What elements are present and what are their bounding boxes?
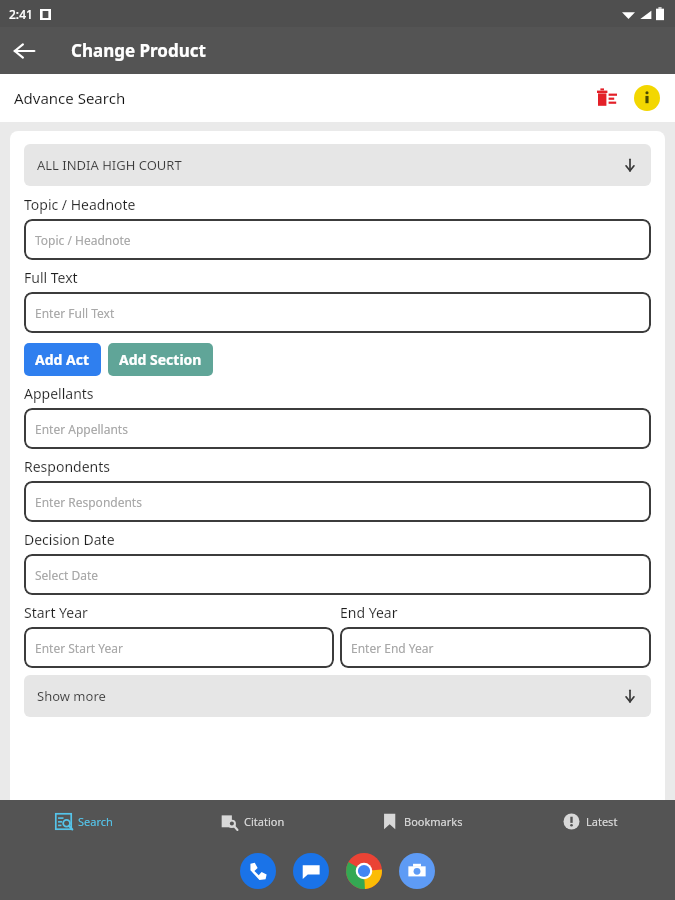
staticText: Citation: [244, 814, 285, 829]
button[interactable]: Phone: [240, 853, 276, 889]
staticText: Show more: [37, 687, 106, 705]
button[interactable]: Enter Start Year: [24, 627, 334, 668]
button[interactable]: Enter Respondents: [24, 481, 651, 522]
button[interactable]: Add Act: [24, 343, 101, 376]
button[interactable]: Chrome: [346, 853, 382, 889]
staticText: Full Text: [24, 268, 78, 287]
staticText: Topic / Headnote: [35, 232, 131, 248]
button[interactable]: Add Section: [108, 343, 213, 376]
staticText: Appellants: [24, 384, 94, 403]
staticText: Enter End Year: [351, 640, 434, 656]
button[interactable]: Enter Appellants: [24, 408, 651, 449]
staticText: Add Act: [35, 350, 90, 369]
staticText: Add Section: [119, 350, 202, 369]
button[interactable]: Messages: [293, 853, 329, 889]
staticText: Enter Start Year: [35, 640, 123, 656]
staticText: Select Date: [35, 567, 99, 583]
staticText: End Year: [340, 603, 398, 622]
button[interactable]: Clear search: [587, 78, 627, 118]
staticText: Bookmarks: [404, 814, 463, 829]
button[interactable]: Bookmarks: [337, 800, 506, 842]
button[interactable]: Search: [0, 800, 168, 842]
button[interactable]: ALL INDIA HIGH COURT: [24, 144, 651, 186]
button[interactable]: Citation: [168, 800, 337, 842]
staticText: Respondents: [24, 457, 110, 476]
button[interactable]: Back: [0, 27, 47, 74]
button[interactable]: Topic / Headnote: [24, 219, 651, 260]
staticText: Start Year: [24, 603, 88, 622]
staticText: 2:41: [9, 6, 33, 22]
staticText: Change Product: [71, 39, 206, 62]
button[interactable]: Select Date: [24, 554, 651, 595]
staticText: Advance Search: [14, 88, 126, 108]
staticText: Latest: [586, 814, 618, 829]
staticText: ALL INDIA HIGH COURT: [37, 156, 182, 174]
button[interactable]: Information: [627, 78, 667, 118]
staticText: Search: [78, 814, 113, 829]
button[interactable]: Enter Full Text: [24, 292, 651, 333]
staticText: Topic / Headnote: [24, 195, 136, 214]
staticText: Decision Date: [24, 530, 115, 549]
button[interactable]: Camera: [399, 853, 435, 889]
button[interactable]: Enter End Year: [340, 627, 651, 668]
staticText: Enter Full Text: [35, 305, 115, 321]
button[interactable]: Latest: [506, 800, 675, 842]
staticText: Enter Appellants: [35, 421, 128, 437]
staticText: Enter Respondents: [35, 494, 142, 510]
button[interactable]: Show more: [24, 675, 651, 717]
